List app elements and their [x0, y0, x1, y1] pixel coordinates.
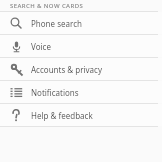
- button[interactable]: Accounts & privacy: [0, 58, 162, 80]
- staticText: Help & feedback: [31, 110, 93, 121]
- button[interactable]: Voice: [0, 35, 162, 57]
- staticText: Phone search: [31, 18, 82, 29]
- staticText: Accounts & privacy: [31, 64, 103, 75]
- staticText: Voice: [31, 41, 51, 52]
- staticText: SEARCH & NOW CARDS: [10, 2, 84, 10]
- button[interactable]: Help & feedback: [0, 104, 162, 126]
- button[interactable]: Notifications: [0, 81, 162, 103]
- button[interactable]: Phone search: [0, 12, 162, 34]
- staticText: Notifications: [31, 87, 79, 98]
